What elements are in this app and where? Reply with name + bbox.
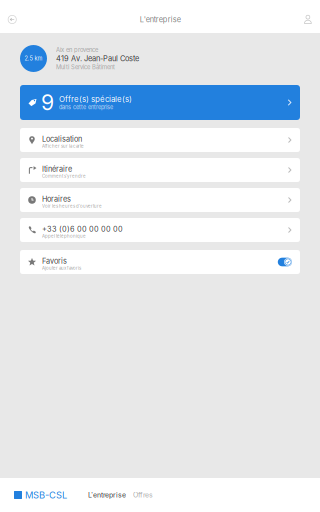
staticText: 2.5 km [24,55,42,62]
staticText: Localisation [42,135,82,144]
button[interactable]: L'entreprise [88,491,126,499]
staticText: Afficher sur la carte [42,143,84,149]
staticText: Offre(s) spéciale(s) [59,94,132,104]
staticText: dans cette entreprise [59,104,113,111]
staticText: L'entreprise [140,15,181,24]
staticText: 419 Av. Jean-Paul Coste [56,54,139,63]
button[interactable]: Itinéraire [20,158,300,182]
staticText: Voir les heures d'ouverture [42,203,102,209]
staticText: Comment s'y rendre [42,173,86,179]
button[interactable]: +33 (0)6 00 00 00 00 [20,218,300,242]
staticText: Aix en provence [56,46,98,53]
button[interactable]: Horaires [20,188,300,212]
staticText: Appel téléphonique [42,233,86,239]
staticText: Ajouter aux favoris [42,265,81,271]
button[interactable]: Offres [133,491,153,499]
staticText: Favoris [42,257,67,266]
staticText: L'entreprise [88,491,126,499]
staticText: Offres [133,491,153,499]
button[interactable]: 9 [20,85,300,120]
staticText: +33 (0)6 00 00 00 00 [42,225,123,234]
staticText: Itinéraire [42,165,72,174]
staticText: 9 [41,90,54,115]
button[interactable]: Localisation [20,128,300,152]
button[interactable]: MSB-CSL [14,489,67,501]
button[interactable]: Back [8,15,16,24]
button[interactable]: Favoris [20,250,300,274]
button[interactable]: Account [304,15,312,24]
staticText: Horaires [42,195,71,204]
staticText: Multi Service Bâtiment [56,63,115,71]
staticText: MSB-CSL [25,489,67,501]
